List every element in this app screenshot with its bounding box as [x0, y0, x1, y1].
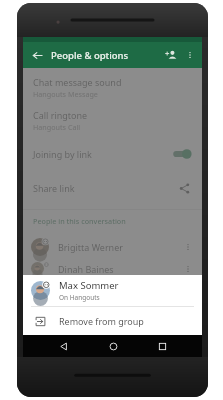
button[interactable]: Dinah Baines	[23, 262, 202, 275]
staticText: People in this conversation	[33, 216, 126, 226]
staticText: Hangouts Call	[33, 122, 81, 132]
button[interactable]: Home	[103, 336, 123, 356]
button[interactable]: Options for Dinah Baines	[180, 262, 196, 275]
staticText: Remove from group	[59, 315, 144, 327]
button[interactable]: Options for Brigitta Werner	[180, 239, 196, 255]
button[interactable]: Add people	[161, 45, 181, 65]
button[interactable]: Share link	[23, 171, 202, 205]
button[interactable]: Back	[53, 336, 73, 356]
button[interactable]: Brigitta Werner	[23, 232, 202, 262]
staticText: Max Sommer	[59, 279, 119, 292]
staticText: Share link	[33, 182, 75, 194]
staticText: On Hangouts	[59, 293, 100, 302]
staticText: Dinah Baines	[58, 263, 114, 275]
staticText: Hangouts Message	[33, 89, 98, 99]
button[interactable]: Joining by link	[23, 137, 202, 171]
button[interactable]: Remove from group	[23, 307, 202, 335]
staticText: Joining by link	[33, 148, 92, 160]
button[interactable]: Chat message sound	[23, 71, 202, 104]
button[interactable]: Recent apps	[152, 336, 172, 356]
staticText: People & options	[51, 49, 129, 62]
button[interactable]: More options	[181, 46, 199, 64]
button[interactable]: Call ringtone	[23, 104, 202, 137]
button[interactable]: Joining by link toggle, on	[172, 148, 192, 160]
staticText: Brigitta Werner	[58, 241, 123, 253]
staticText: Chat message sound	[33, 76, 122, 88]
staticText: Call ringtone	[33, 109, 88, 121]
button[interactable]: Navigate up	[27, 45, 47, 65]
other: Share	[176, 180, 192, 196]
button[interactable]: Max Sommer	[23, 275, 202, 306]
